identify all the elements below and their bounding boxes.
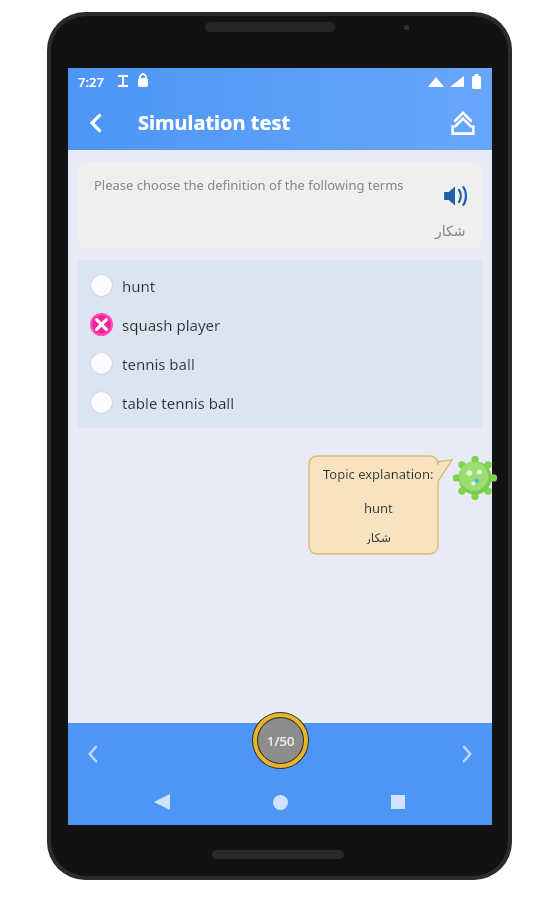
button[interactable]: table tennis ball [78,383,482,422]
button[interactable]: Question 1 of 50 [252,712,309,769]
button[interactable]: tennis ball [78,344,482,383]
button[interactable]: Play audio [436,177,474,215]
button[interactable]: Previous question [68,729,118,779]
button[interactable]: Back [74,101,118,145]
button[interactable]: Please choose the definition of the foll… [78,162,482,249]
button[interactable]: Next question [442,729,492,779]
staticText: Topic explanation: [323,465,434,483]
staticText: شکار [365,531,392,544]
button[interactable]: Home [256,779,304,825]
staticText: Simulation test [138,109,291,136]
staticText: Please choose the definition of the foll… [94,176,404,194]
button[interactable]: Recent apps [374,779,422,825]
button[interactable]: squash player [78,305,482,344]
staticText: hunt [122,276,156,296]
staticText: 1/50 [267,732,295,750]
button[interactable]: Upload [440,100,486,146]
staticText: table tennis ball [122,393,235,413]
staticText: tennis ball [122,354,195,374]
button[interactable]: hunt [78,266,482,305]
button[interactable]: Topic explanation: [309,456,452,554]
staticText: شکار [435,223,466,239]
staticText: hunt [364,499,393,517]
staticText: 7:27 [78,73,104,91]
button[interactable]: Back [138,779,186,825]
staticText: squash player [122,315,221,335]
